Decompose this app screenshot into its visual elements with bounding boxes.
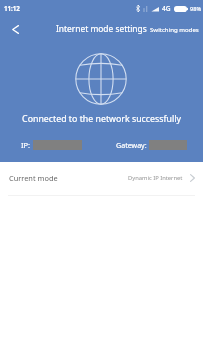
staticText: 98% <box>190 5 202 13</box>
staticText: 4G <box>162 4 171 13</box>
staticText: Dynamic IP Internet <box>128 174 183 182</box>
staticText: IP: <box>21 140 31 150</box>
staticText: Internet mode settings <box>56 23 147 34</box>
staticText: Connected to the network successfully <box>22 113 181 125</box>
button[interactable]: Current mode <box>0 162 203 194</box>
button[interactable]: Back <box>2 16 28 42</box>
button[interactable]: Switching modes <box>146 16 203 42</box>
staticText: 11:12 <box>4 4 20 12</box>
staticText: Gateway: <box>116 140 147 150</box>
staticText: Switching modes <box>150 25 199 33</box>
staticText: Current mode <box>9 173 58 183</box>
